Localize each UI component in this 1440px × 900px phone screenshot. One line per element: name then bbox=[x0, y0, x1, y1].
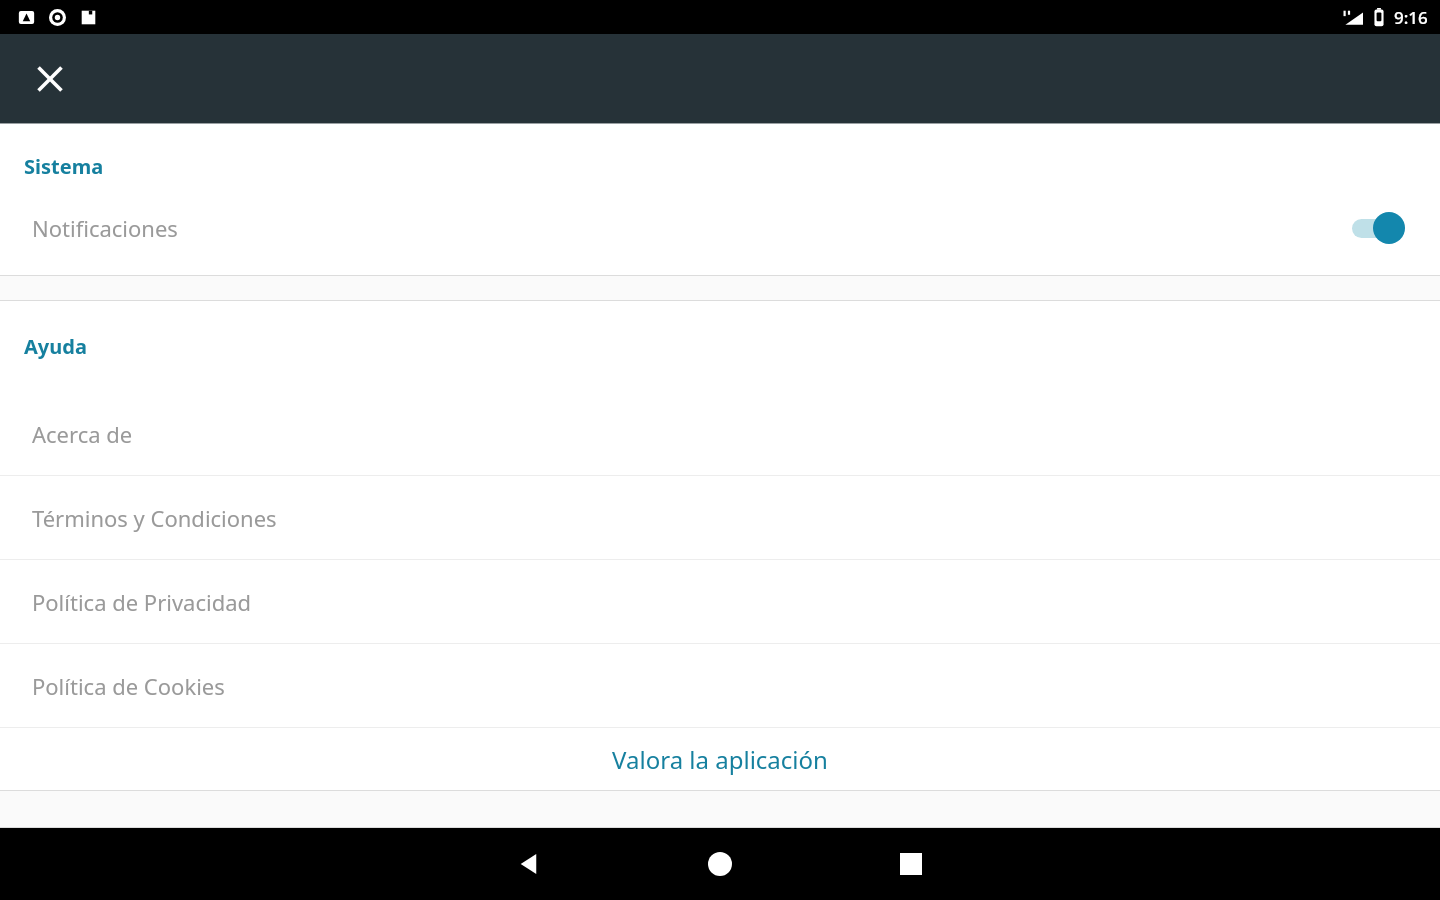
staticText: Notificaciones bbox=[32, 213, 1348, 243]
button[interactable]: Acerca de bbox=[0, 392, 1440, 475]
button[interactable]: Cerrar bbox=[18, 47, 82, 111]
button[interactable]: Notificaciones bbox=[0, 180, 1440, 275]
staticText: Política de Privacidad bbox=[32, 587, 252, 617]
button[interactable]: Valora la aplicación bbox=[0, 728, 1440, 790]
staticText: Acerca de bbox=[32, 419, 133, 449]
staticText: Sistema bbox=[24, 153, 104, 180]
button[interactable]: Recientes bbox=[871, 828, 951, 900]
staticText: Política de Cookies bbox=[32, 671, 225, 701]
button[interactable]: Inicio bbox=[680, 828, 760, 900]
button[interactable]: Política de Privacidad bbox=[0, 560, 1440, 643]
button[interactable]: Política de Cookies bbox=[0, 644, 1440, 727]
staticText: Valora la aplicación bbox=[612, 743, 828, 776]
button[interactable]: Notificaciones activadas bbox=[1348, 208, 1418, 248]
staticText: Términos y Condiciones bbox=[32, 503, 277, 533]
staticText: 9:16 bbox=[1394, 6, 1428, 29]
button[interactable]: Atrás bbox=[489, 828, 569, 900]
button[interactable]: Términos y Condiciones bbox=[0, 476, 1440, 559]
staticText: Ayuda bbox=[24, 333, 87, 360]
